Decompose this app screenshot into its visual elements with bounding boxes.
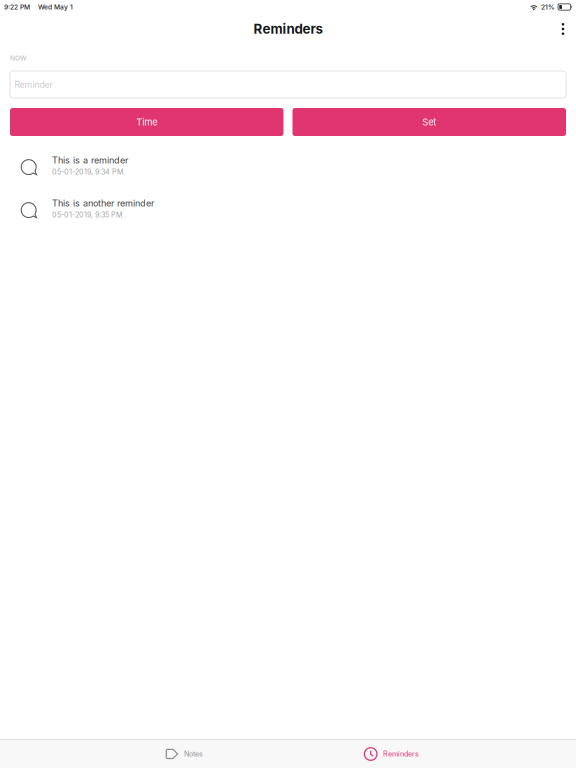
- staticText: 05-01-2019, 9:35 PM: [52, 210, 123, 219]
- button[interactable]: This is another reminder: [0, 189, 576, 232]
- staticText: NOW: [10, 54, 27, 62]
- button[interactable]: Set: [292, 108, 566, 136]
- staticText: Set: [422, 116, 436, 128]
- staticText: 9:22 PM: [4, 3, 30, 11]
- staticText: This is another reminder: [52, 198, 154, 209]
- staticText: Notes: [184, 750, 203, 758]
- staticText: This is a reminder: [52, 155, 128, 166]
- button[interactable]: Reminders: [203, 740, 576, 768]
- staticText: 21%: [541, 3, 555, 11]
- staticText: 05-01-2019, 9:34 PM: [52, 167, 124, 176]
- button[interactable]: Time: [10, 108, 283, 136]
- button[interactable]: Notes: [0, 740, 203, 768]
- button[interactable]: This is a reminder: [0, 146, 576, 189]
- staticText: Reminder: [14, 79, 52, 90]
- staticText: Reminders: [253, 21, 322, 37]
- staticText: Wed May 1: [38, 3, 73, 11]
- staticText: Time: [136, 116, 157, 128]
- button[interactable]: More options: [550, 14, 576, 44]
- staticText: Reminders: [383, 750, 419, 758]
